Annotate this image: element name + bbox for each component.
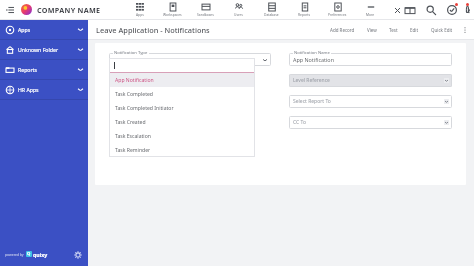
button[interactable]: View — [361, 22, 383, 37]
button[interactable]: Edit — [404, 22, 425, 37]
button[interactable]: Reports — [0, 60, 88, 79]
staticText: App Notification — [113, 56, 154, 63]
staticText: Workspaces — [163, 12, 182, 16]
button[interactable]: Preferences — [321, 0, 354, 19]
staticText: Reports — [18, 66, 37, 73]
button[interactable]: Select Report To — [289, 95, 452, 108]
staticText: Task Created — [115, 119, 146, 126]
button[interactable]: Apps — [0, 20, 88, 39]
button[interactable]: Sandboxes — [189, 0, 222, 19]
staticText: powered by — [5, 252, 24, 257]
staticText: Notification Type — [114, 50, 148, 56]
staticText: Database — [264, 12, 279, 16]
staticText: More — [366, 12, 375, 16]
button[interactable]: Task Completed — [109, 87, 255, 101]
staticText: Edit — [410, 27, 419, 33]
button[interactable]: Task Completed Initiator — [109, 101, 255, 115]
staticText: CC To — [293, 119, 306, 126]
button[interactable]: App Notification — [109, 73, 255, 87]
staticText: Task Completed Initiator — [115, 105, 174, 112]
staticText: Task Escalation — [115, 133, 151, 140]
staticText: Q — [27, 251, 31, 257]
staticText: Users — [234, 12, 243, 16]
button[interactable]: Quick Edit — [425, 22, 459, 37]
staticText: Notification Name — [294, 50, 330, 56]
staticText: Apps — [136, 12, 144, 16]
button[interactable]: Tasks — [445, 3, 458, 16]
staticText: Task Completed — [115, 91, 153, 98]
staticText: Quick Edit — [431, 27, 453, 33]
button[interactable]: Test — [383, 22, 404, 37]
button[interactable]: Add Record — [324, 22, 361, 37]
staticText: View — [367, 27, 377, 33]
button[interactable]: Task Escalation — [109, 129, 255, 143]
button[interactable]: Apps — [123, 0, 156, 19]
button[interactable]: Settings — [72, 249, 83, 260]
button[interactable]: Close — [391, 4, 403, 16]
button[interactable]: More options — [459, 24, 470, 35]
button[interactable]: Workspaces — [156, 0, 189, 19]
button[interactable]: Collapse menu — [4, 4, 16, 16]
button[interactable]: More — [354, 0, 387, 19]
button[interactable]: CC To — [289, 116, 452, 129]
button[interactable]: Database — [255, 0, 288, 19]
staticText: HR Apps — [18, 86, 39, 93]
staticText: COMPANY NAME — [37, 5, 101, 15]
staticText: App Notification — [293, 56, 334, 63]
staticText: App Notification — [115, 77, 154, 84]
staticText: Sandboxes — [197, 12, 214, 16]
staticText: Select Report To — [293, 98, 331, 105]
staticText: Level Reference — [293, 77, 330, 84]
button[interactable]: HR Apps — [0, 80, 88, 99]
staticText: Unknown Folder — [18, 46, 59, 53]
button[interactable]: Search — [424, 3, 437, 16]
button[interactable]: Level Reference — [289, 74, 452, 87]
button[interactable]: Unknown Folder — [0, 40, 88, 59]
button[interactable]: Task Reminder — [109, 143, 255, 157]
staticText: Task Reminder — [115, 147, 151, 154]
button[interactable]: Reports — [288, 0, 321, 19]
button[interactable]: Task Created — [109, 115, 255, 129]
staticText: Reports — [298, 12, 311, 16]
button[interactable]: Users — [222, 0, 255, 19]
staticText: Test — [389, 27, 398, 33]
staticText: Preferences — [328, 12, 347, 16]
button[interactable]: Store — [403, 3, 416, 16]
staticText: quixy — [33, 251, 48, 258]
button[interactable]: Notifications — [466, 3, 469, 16]
staticText: Add Record — [330, 27, 355, 33]
staticText: Apps — [18, 26, 31, 33]
staticText: Leave Application - Notifications — [96, 25, 210, 35]
